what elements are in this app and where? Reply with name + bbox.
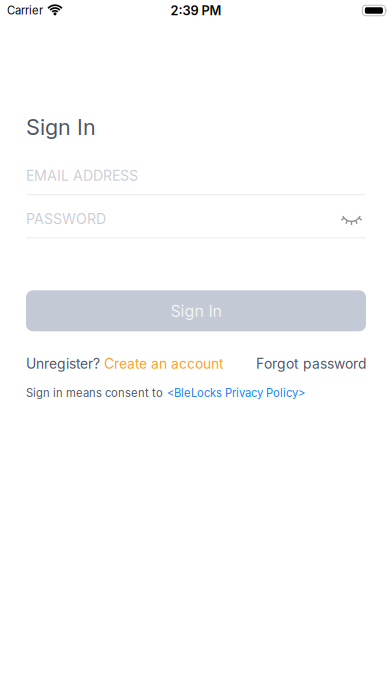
button[interactable]: Sign In [26,290,366,331]
button[interactable]: Show password [342,212,366,226]
staticText: <BleLocks Privacy Policy> [167,386,305,400]
staticText: Sign In [26,114,96,140]
staticText: EMAIL ADDRESS [26,167,138,184]
staticText: Create an account [104,355,224,372]
staticText: Unregister? [26,355,104,372]
button[interactable]: Create an account [104,355,224,372]
staticText: Forgot password [256,355,366,372]
staticText: 2:39 PM [170,3,221,18]
staticText: PASSWORD [26,210,106,227]
staticText: Sign in means consent to [26,386,163,400]
button[interactable]: <BleLocks Privacy Policy> [167,386,305,400]
button[interactable]: Forgot password [256,355,366,372]
staticText: Carrier [7,4,43,17]
staticText: Sign In [170,301,221,321]
